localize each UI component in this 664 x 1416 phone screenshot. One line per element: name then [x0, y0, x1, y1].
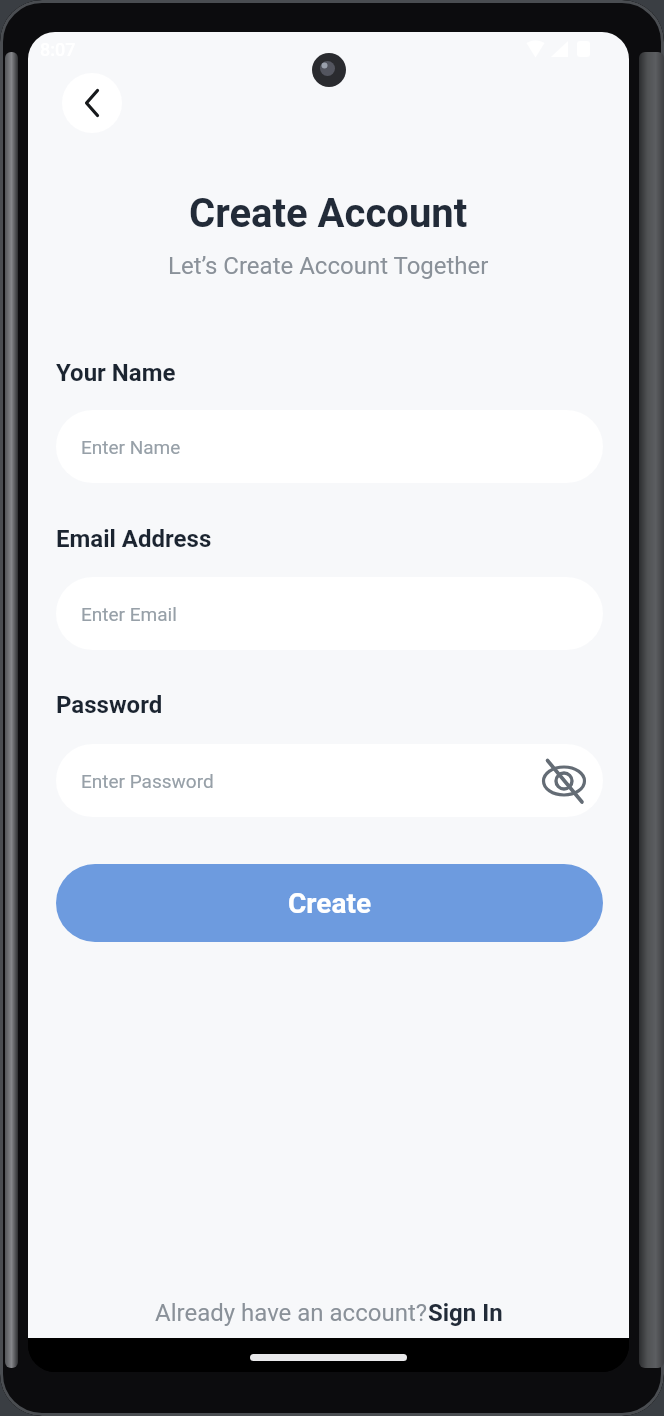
staticText: 8:07 — [40, 39, 76, 60]
button[interactable]: Enter Name — [56, 410, 603, 483]
staticText: Enter Email — [81, 603, 177, 625]
staticText: Your Name — [56, 359, 176, 387]
button[interactable] — [62, 73, 122, 133]
staticText: Already have an account? — [155, 1299, 428, 1327]
staticText: Create Account — [189, 190, 468, 237]
staticText: Let’s Create Account Together — [168, 252, 489, 280]
staticText: Create — [288, 887, 372, 920]
button[interactable]: Enter Email — [56, 577, 603, 650]
staticText: Password — [56, 691, 163, 719]
button[interactable]: Create — [56, 864, 603, 942]
staticText: Enter Password — [81, 770, 214, 792]
button[interactable]: Enter Password — [56, 744, 603, 817]
button[interactable]: Sign In — [428, 1299, 503, 1327]
staticText: Enter Name — [81, 436, 181, 458]
staticText: Email Address — [56, 525, 212, 553]
